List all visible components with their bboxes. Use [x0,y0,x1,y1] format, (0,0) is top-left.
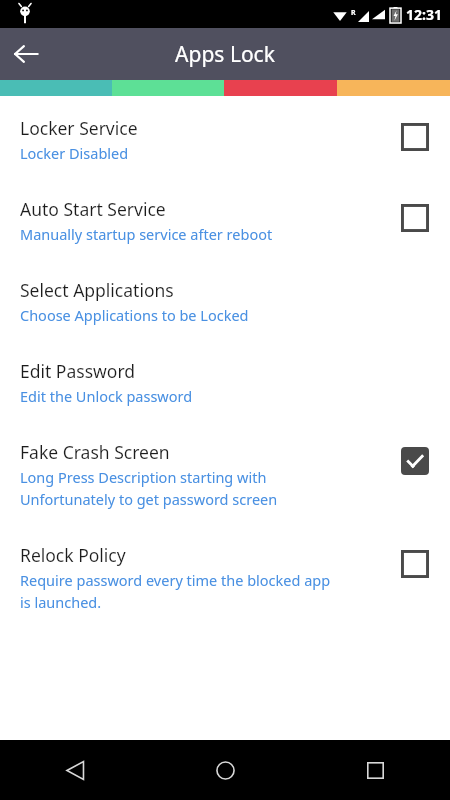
button[interactable]: Relock Policy [0,523,450,626]
staticText: R [351,8,356,18]
button[interactable]: Select Applications [0,258,450,339]
staticText: Locker Disabled [20,143,129,163]
staticText: Edit Password [20,359,136,383]
staticText: Auto Start Service [20,197,166,221]
staticText: Long Press Description starting with [20,467,267,487]
staticText: Relock Policy [20,543,126,567]
button[interactable]: Auto Start Service [0,177,450,258]
button[interactable]: Home [150,740,300,800]
staticText: Unfortunately to get password screen [20,489,278,509]
button[interactable]: Edit Password [0,339,450,420]
staticText: Apps Lock [175,40,275,69]
staticText: Choose Applications to be Locked [20,305,249,325]
staticText: Select Applications [20,278,174,302]
button[interactable]: Locker Service [0,96,450,177]
staticText: Edit the Unlock password [20,386,193,406]
staticText: Require password every time the blocked … [20,570,331,590]
button[interactable]: Fake Crash Screen [0,420,450,523]
staticText: Fake Crash Screen [20,440,170,464]
button[interactable]: Back [0,740,150,800]
button[interactable]: Back [0,28,52,80]
staticText: Manually startup service after reboot [20,224,273,244]
staticText: is launched. [20,592,102,612]
staticText: Locker Service [20,116,138,140]
button[interactable]: Unchecked [400,122,430,152]
button[interactable]: Unchecked [400,549,430,579]
button[interactable]: Recent apps [300,740,450,800]
staticText: 12:31 [406,5,442,24]
button[interactable]: Checked [400,446,430,476]
button[interactable]: Unchecked [400,203,430,233]
